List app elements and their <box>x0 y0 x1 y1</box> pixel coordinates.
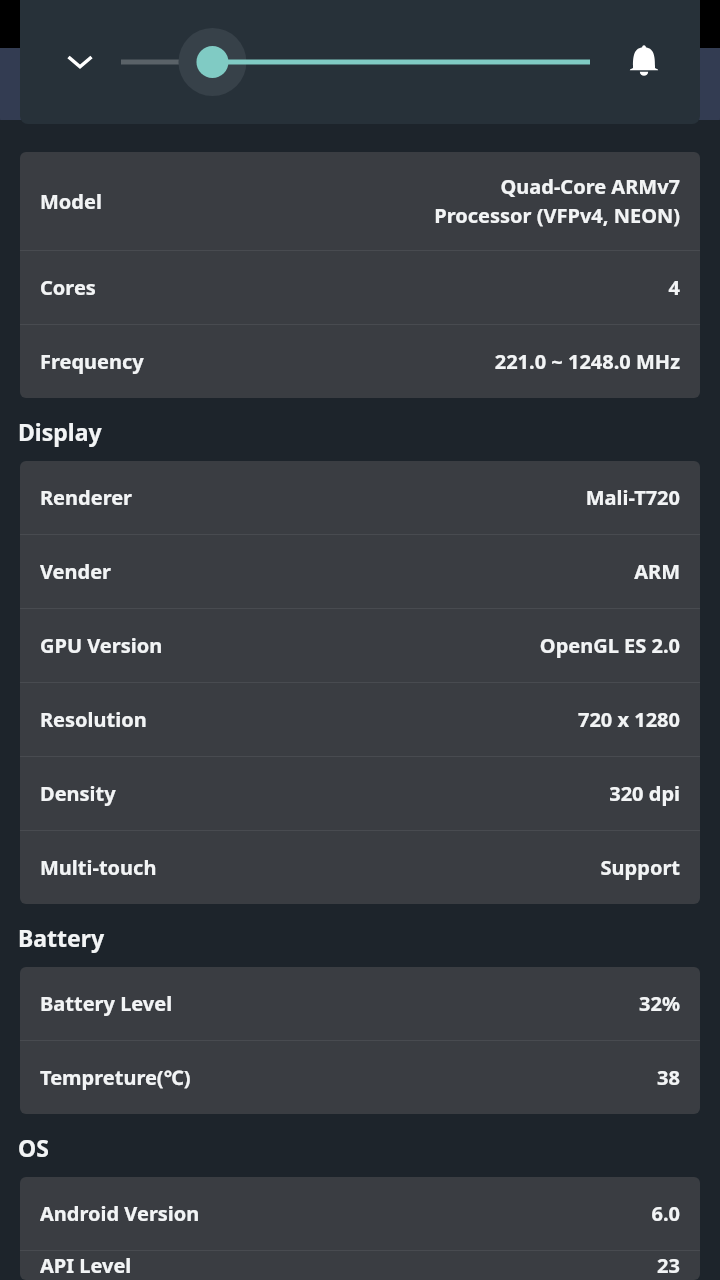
staticText: OpenGL ES 2.0 <box>539 632 680 659</box>
staticText: Resolution <box>40 706 147 733</box>
button[interactable]: API Level <box>20 1251 700 1280</box>
staticText: Frequency <box>40 348 144 375</box>
staticText: 221.0 ~ 1248.0 MHz <box>494 348 680 375</box>
button[interactable]: Battery Level <box>20 967 700 1040</box>
staticText: OS <box>18 1132 49 1163</box>
staticText: 720 x 1280 <box>577 706 680 733</box>
staticText: Renderer <box>40 484 133 511</box>
button[interactable]: Frequency <box>20 325 700 398</box>
staticText: 6.0 <box>651 1200 680 1227</box>
staticText: Battery <box>18 922 105 953</box>
staticText: 38 <box>657 1064 680 1091</box>
staticText: Processor (VFPv4, NEON) <box>434 202 680 229</box>
staticText: Android Version <box>40 1200 200 1227</box>
staticText: Battery Level <box>40 990 173 1017</box>
staticText: Tempreture(℃) <box>40 1064 191 1091</box>
button[interactable]: Notifications <box>616 34 672 90</box>
button[interactable]: Brightness slider <box>121 27 602 97</box>
button[interactable]: Density <box>20 757 700 830</box>
staticText: 32% <box>639 990 680 1017</box>
staticText: Cores <box>40 274 96 301</box>
staticText: Quad-Core ARMv7 <box>500 173 680 200</box>
button[interactable]: Cores <box>20 251 700 324</box>
button[interactable]: Resolution <box>20 683 700 756</box>
staticText: Vender <box>40 558 112 585</box>
staticText: 23 <box>657 1252 680 1279</box>
staticText: Support <box>600 854 680 881</box>
staticText: Model <box>40 188 102 215</box>
button[interactable]: Android Version <box>20 1177 700 1250</box>
button[interactable]: Renderer <box>20 461 700 534</box>
staticText: Density <box>40 780 116 807</box>
staticText: API Level <box>40 1252 132 1279</box>
staticText: ARM <box>634 558 680 585</box>
staticText: GPU Version <box>40 632 163 659</box>
staticText: 320 dpi <box>609 780 680 807</box>
button[interactable]: Collapse <box>56 38 104 86</box>
button[interactable]: Model <box>20 152 700 250</box>
staticText: Mali-T720 <box>585 484 680 511</box>
staticText: 4 <box>668 274 680 301</box>
button[interactable]: Vender <box>20 535 700 608</box>
staticText: Display <box>18 416 102 447</box>
button[interactable]: Multi-touch <box>20 831 700 904</box>
button[interactable]: Tempreture(℃) <box>20 1041 700 1114</box>
staticText: Multi-touch <box>40 854 157 881</box>
button[interactable]: GPU Version <box>20 609 700 682</box>
